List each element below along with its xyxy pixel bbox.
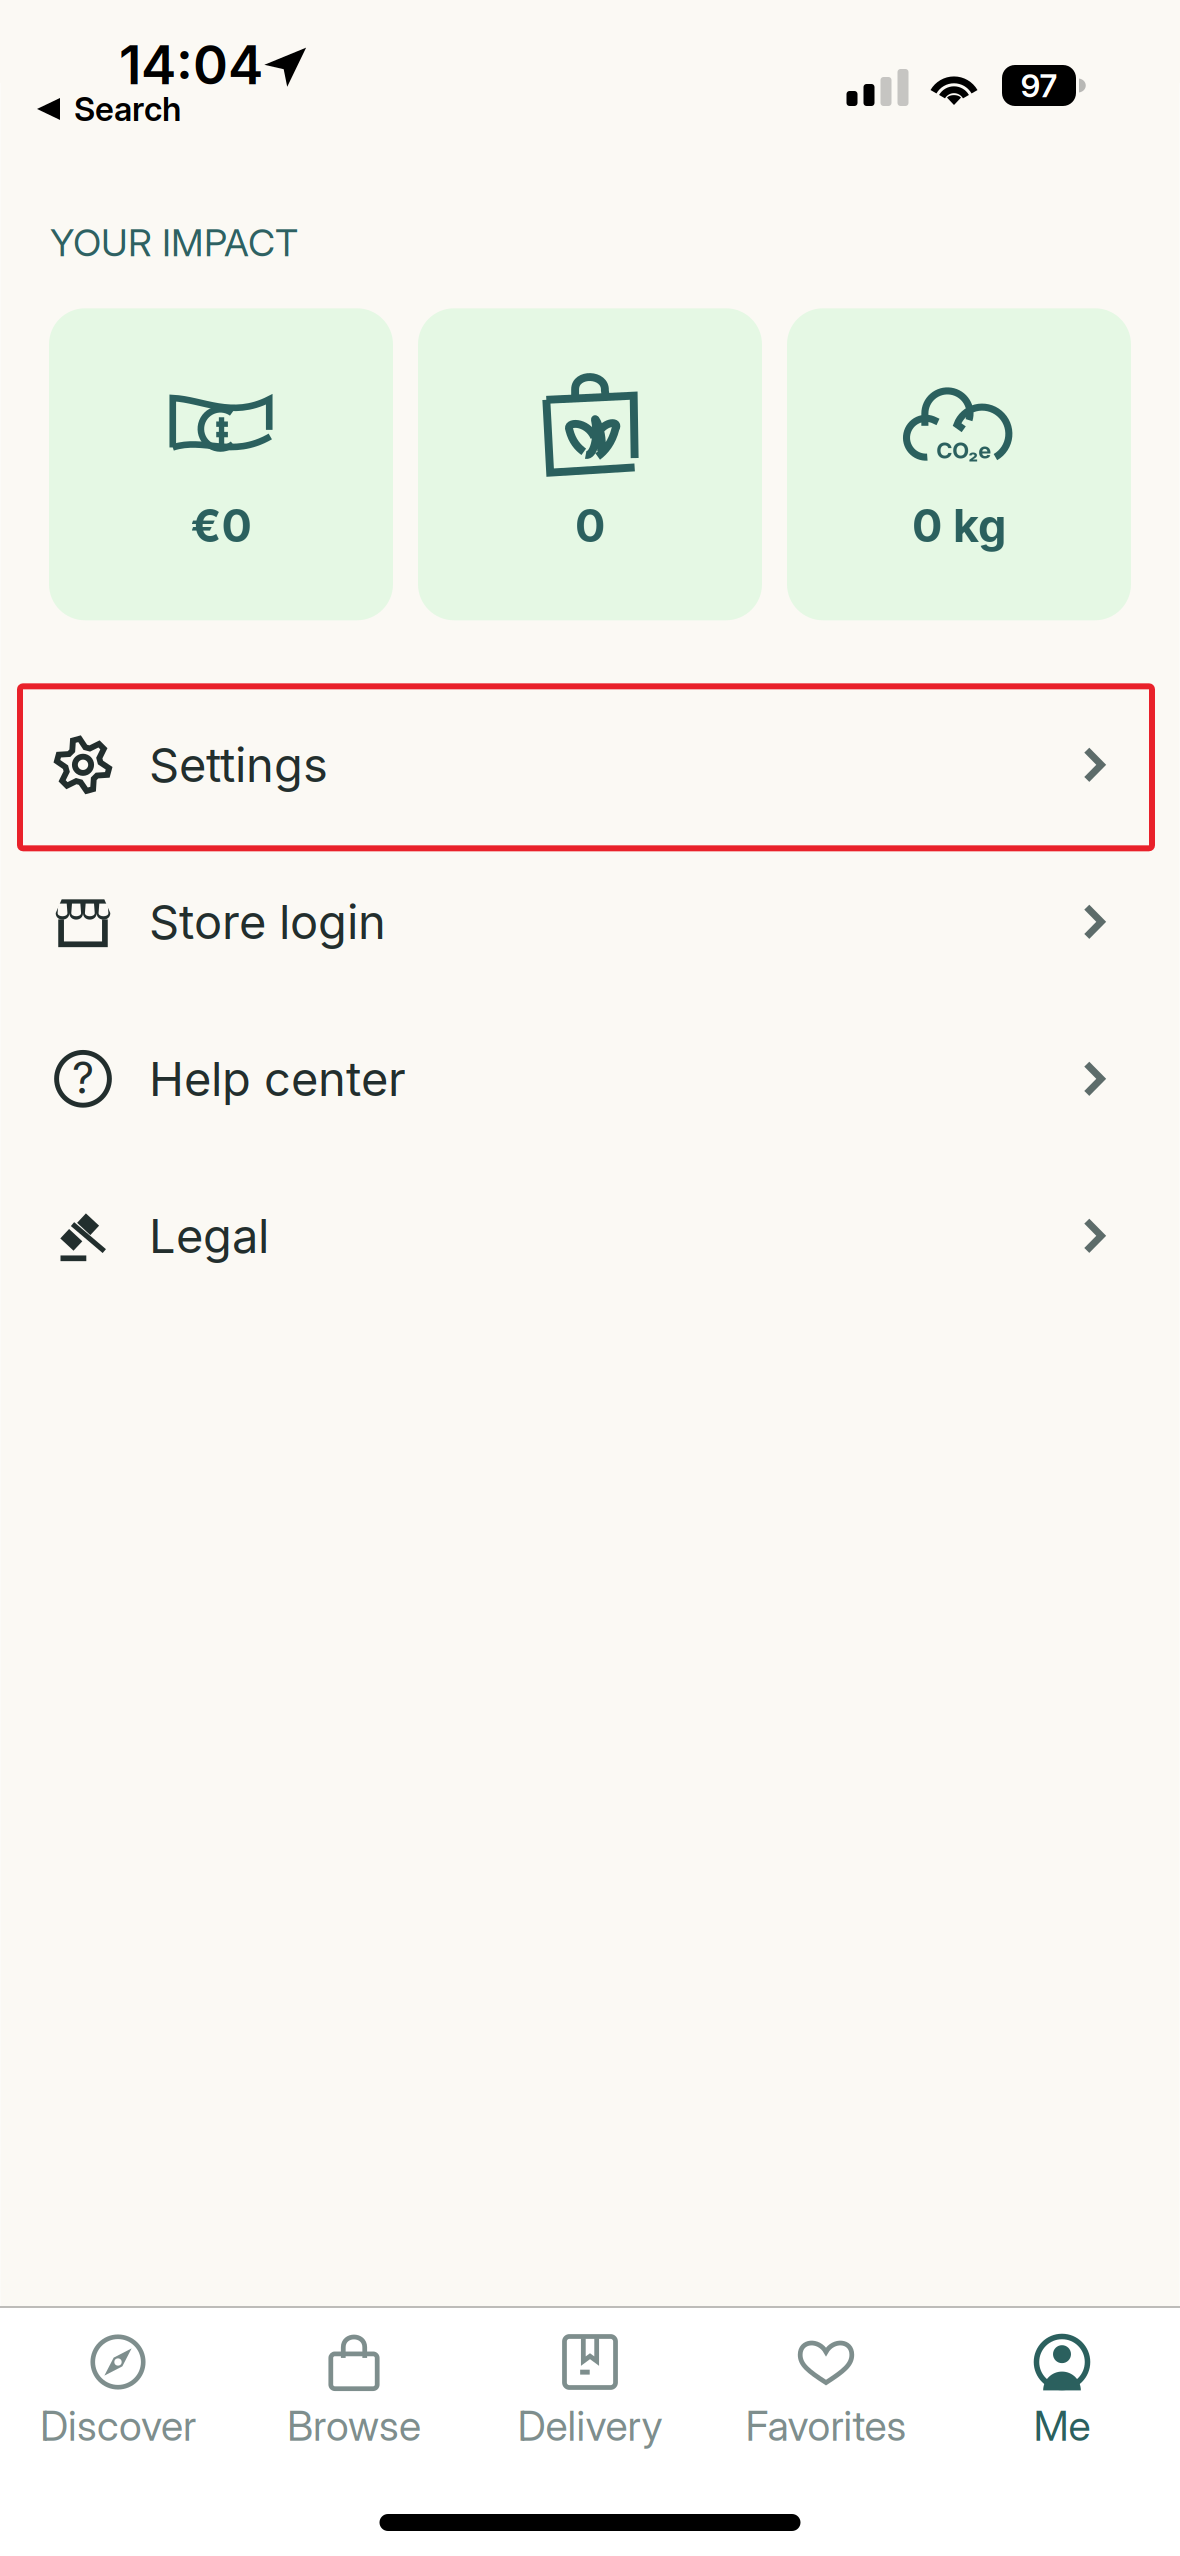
staticText: Help center [149, 1050, 406, 1107]
staticText: YOUR IMPACT [50, 220, 298, 265]
staticText: €0 [190, 498, 251, 553]
staticText: Delivery [517, 2401, 662, 2451]
button[interactable]: Legal [0, 1157, 1180, 1314]
button[interactable]: Delivery [472, 2332, 708, 2477]
staticText: ? [72, 1052, 94, 1104]
button[interactable]: ? [0, 1000, 1180, 1157]
staticText: CO₂e [936, 437, 991, 464]
button[interactable]: Search [37, 83, 181, 135]
button[interactable]: Settings [0, 686, 1180, 843]
staticText: Favorites [745, 2401, 906, 2451]
staticText: Legal [149, 1207, 269, 1264]
button[interactable]: Store login [0, 843, 1180, 1000]
staticText: Settings [149, 736, 328, 793]
staticText: 0 kg [912, 498, 1006, 553]
staticText: 14:04 [119, 33, 263, 97]
staticText: Discover [40, 2401, 196, 2451]
button[interactable]: Browse [236, 2332, 472, 2477]
button[interactable]: Discover [0, 2332, 236, 2477]
staticText: 0 [575, 498, 605, 553]
staticText: Store login [149, 893, 386, 950]
staticText: Me [1033, 2401, 1090, 2451]
staticText: 97 [1020, 66, 1057, 105]
button[interactable]: Me [944, 2332, 1180, 2477]
staticText: Search [74, 89, 181, 129]
button[interactable]: Favorites [708, 2332, 944, 2477]
staticText: Browse [287, 2401, 421, 2451]
